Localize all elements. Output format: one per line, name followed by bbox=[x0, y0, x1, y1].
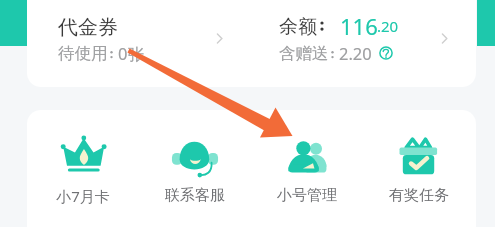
other: 查看代金券 bbox=[213, 32, 226, 45]
other: 赠送说明 bbox=[379, 46, 393, 60]
staticText: 待使用 bbox=[58, 43, 108, 64]
staticText: 有奖任务 bbox=[389, 186, 449, 205]
button[interactable]: 小7月卡 bbox=[34, 110, 132, 206]
staticText: 余额 bbox=[279, 15, 317, 39]
staticText: .20 bbox=[377, 16, 399, 36]
staticText: 小7月卡 bbox=[56, 186, 110, 206]
button[interactable]: 余额 bbox=[252, 0, 476, 87]
button[interactable]: 联系客服 bbox=[146, 110, 244, 205]
staticText: 小号管理 bbox=[277, 186, 337, 205]
staticText: 116 bbox=[340, 11, 378, 41]
staticText: 联系客服 bbox=[165, 186, 225, 205]
button[interactable]: 有奖任务 bbox=[370, 110, 468, 205]
staticText: 0张 bbox=[118, 42, 144, 65]
staticText: 含赠送 bbox=[279, 43, 329, 64]
staticText: 2.20 bbox=[339, 42, 372, 64]
button[interactable]: 小号管理 bbox=[258, 110, 356, 205]
button[interactable]: 代金券 bbox=[27, 0, 252, 87]
other: 查看余额明细 bbox=[438, 32, 451, 45]
staticText: 代金券 bbox=[58, 15, 118, 40]
